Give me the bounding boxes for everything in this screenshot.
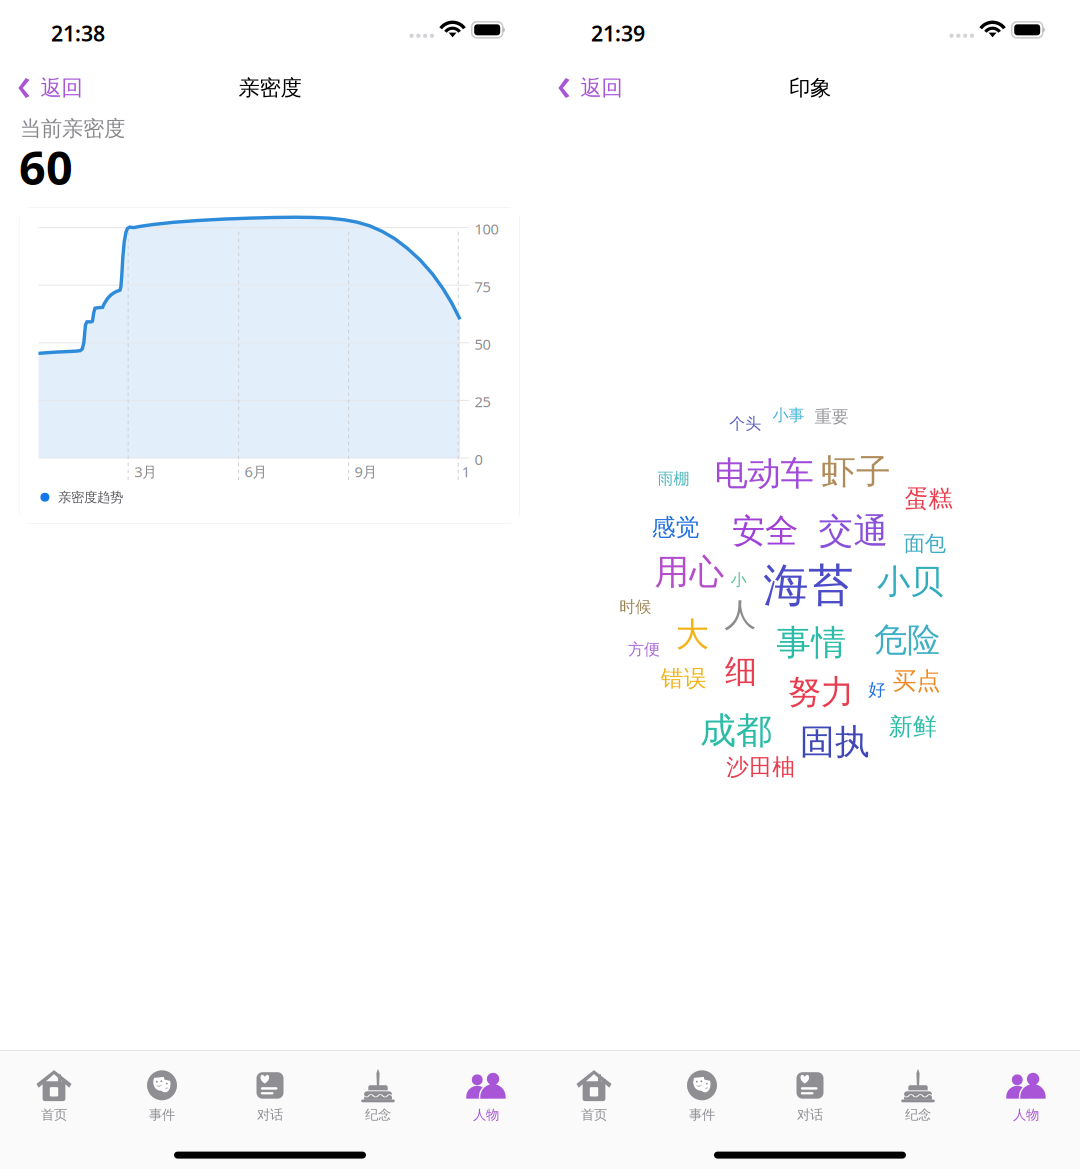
staticText: 1	[462, 462, 470, 481]
staticText: 方便	[628, 640, 660, 659]
button[interactable]: 人物	[432, 1068, 540, 1120]
staticText: 买点	[892, 666, 940, 696]
staticText: 亲密度趋势	[58, 489, 123, 505]
staticText: 时候	[619, 597, 651, 617]
staticText: 9月	[355, 462, 378, 481]
button[interactable]: 首页	[540, 1068, 648, 1120]
staticText: 成都	[700, 709, 772, 753]
staticText: 人物	[1013, 1106, 1039, 1123]
staticText: 对话	[797, 1106, 823, 1123]
button[interactable]: 对话	[756, 1068, 864, 1120]
staticText: 努力	[788, 672, 854, 712]
staticText: 对话	[257, 1106, 283, 1123]
staticText: 大	[676, 614, 709, 655]
staticText: 21:39	[591, 19, 645, 47]
button[interactable]: 对话	[216, 1068, 324, 1120]
staticText: 25	[474, 392, 490, 411]
staticText: 小贝	[877, 561, 943, 602]
staticText: 雨棚	[657, 469, 689, 488]
staticText: 用心	[654, 551, 724, 594]
staticText: 交通	[818, 510, 888, 552]
staticText: 事件	[689, 1106, 715, 1123]
staticText: 纪念	[905, 1106, 931, 1123]
staticText: 重要	[815, 406, 849, 427]
staticText: 海苔	[763, 558, 853, 613]
button[interactable]: 返回	[0, 63, 94, 113]
staticText: 感觉	[651, 513, 699, 542]
staticText: 好	[868, 679, 885, 700]
button[interactable]: 首页	[0, 1068, 108, 1120]
button[interactable]: 返回	[540, 63, 634, 113]
staticText: 21:38	[51, 19, 105, 47]
staticText: 75	[474, 277, 490, 296]
staticText: 人物	[473, 1106, 499, 1123]
staticText: 6月	[245, 462, 268, 481]
staticText: 50	[474, 334, 490, 354]
staticText: 面包	[904, 531, 946, 557]
button[interactable]: 纪念	[324, 1068, 432, 1120]
staticText: 小	[731, 570, 747, 590]
button[interactable]: 纪念	[864, 1068, 972, 1120]
staticText: 错误	[661, 665, 707, 692]
staticText: 100	[474, 219, 498, 239]
staticText: 人	[724, 595, 756, 634]
staticText: 危险	[874, 620, 940, 661]
staticText: 返回	[40, 75, 82, 101]
staticText: 安全	[732, 511, 798, 551]
staticText: 细	[725, 652, 757, 691]
staticText: 60	[19, 136, 73, 198]
staticText: 首页	[581, 1106, 607, 1123]
staticText: 事件	[149, 1106, 175, 1123]
staticText: 小事	[773, 405, 805, 425]
staticText: 返回	[580, 75, 622, 101]
staticText: 0	[474, 449, 482, 469]
staticText: 虾子	[821, 450, 891, 493]
staticText: 固执	[800, 721, 870, 763]
staticText: 纪念	[365, 1106, 391, 1123]
staticText: 沙田柚	[726, 753, 795, 781]
staticText: 电动车	[714, 453, 813, 494]
button[interactable]: 人物	[972, 1068, 1080, 1120]
button[interactable]: 事件	[648, 1068, 756, 1120]
staticText: 印象	[789, 75, 831, 101]
staticText: 个头	[729, 414, 761, 434]
staticText: 首页	[41, 1106, 67, 1123]
staticText: 事情	[776, 621, 846, 664]
staticText: 蛋糕	[904, 484, 952, 513]
button[interactable]: 事件	[108, 1068, 216, 1120]
staticText: 新鲜	[889, 712, 937, 741]
staticText: 亲密度	[238, 75, 301, 101]
staticText: 当前亲密度	[20, 115, 125, 142]
staticText: 3月	[134, 462, 157, 481]
